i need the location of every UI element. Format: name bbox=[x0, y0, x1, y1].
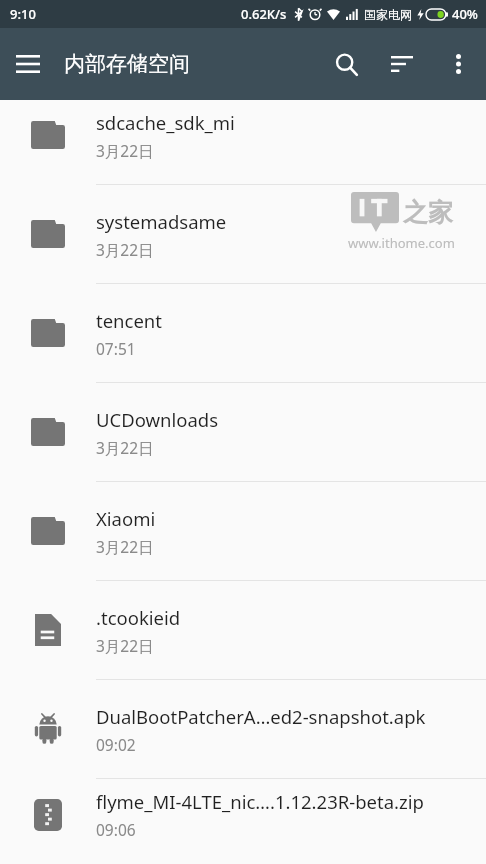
staticText: www.ithome.com bbox=[348, 234, 455, 252]
button[interactable]: Xiaomi bbox=[0, 482, 486, 580]
button[interactable]: DualBootPatcherA…ed2-snapshot.apk bbox=[0, 680, 486, 778]
staticText: .tcookieid bbox=[96, 605, 181, 630]
staticText: 3月22日 bbox=[96, 239, 154, 260]
button[interactable]: UCDownloads bbox=[0, 383, 486, 481]
staticText: 09:02 bbox=[96, 734, 136, 755]
staticText: 07:51 bbox=[96, 338, 136, 359]
staticText: sdcache_sdk_mi bbox=[96, 110, 235, 135]
button[interactable]: More options bbox=[430, 36, 486, 92]
staticText: 40% bbox=[452, 5, 478, 23]
button[interactable]: tencent bbox=[0, 284, 486, 382]
button[interactable]: systemadsame bbox=[0, 185, 486, 283]
staticText: tencent bbox=[96, 308, 162, 333]
staticText: Xiaomi bbox=[96, 506, 156, 531]
staticText: flyme_MI-4LTE_nic….1.12.23R-beta.zip bbox=[96, 789, 424, 814]
button[interactable]: Search bbox=[318, 36, 374, 92]
staticText: systemadsame bbox=[96, 209, 227, 234]
staticText: 3月22日 bbox=[96, 635, 154, 656]
staticText: 国家电网 bbox=[364, 7, 412, 22]
staticText: 9:10 bbox=[10, 5, 36, 23]
staticText: 内部存储空间 bbox=[64, 51, 190, 77]
staticText: DualBootPatcherA…ed2-snapshot.apk bbox=[96, 704, 426, 729]
staticText: 3月22日 bbox=[96, 437, 154, 458]
staticText: 3月22日 bbox=[96, 536, 154, 557]
staticText: 之家 bbox=[403, 197, 453, 228]
button[interactable]: Sort bbox=[374, 36, 430, 92]
button[interactable]: flyme_MI-4LTE_nic….1.12.23R-beta.zip bbox=[0, 779, 486, 850]
staticText: 0.62K/s bbox=[241, 5, 287, 23]
staticText: UCDownloads bbox=[96, 407, 219, 432]
staticText: 09:06 bbox=[96, 819, 136, 840]
staticText: 3月22日 bbox=[96, 140, 154, 161]
button[interactable]: sdcache_sdk_mi bbox=[0, 86, 486, 184]
button[interactable]: Menu bbox=[0, 36, 56, 92]
button[interactable]: .tcookieid bbox=[0, 581, 486, 679]
